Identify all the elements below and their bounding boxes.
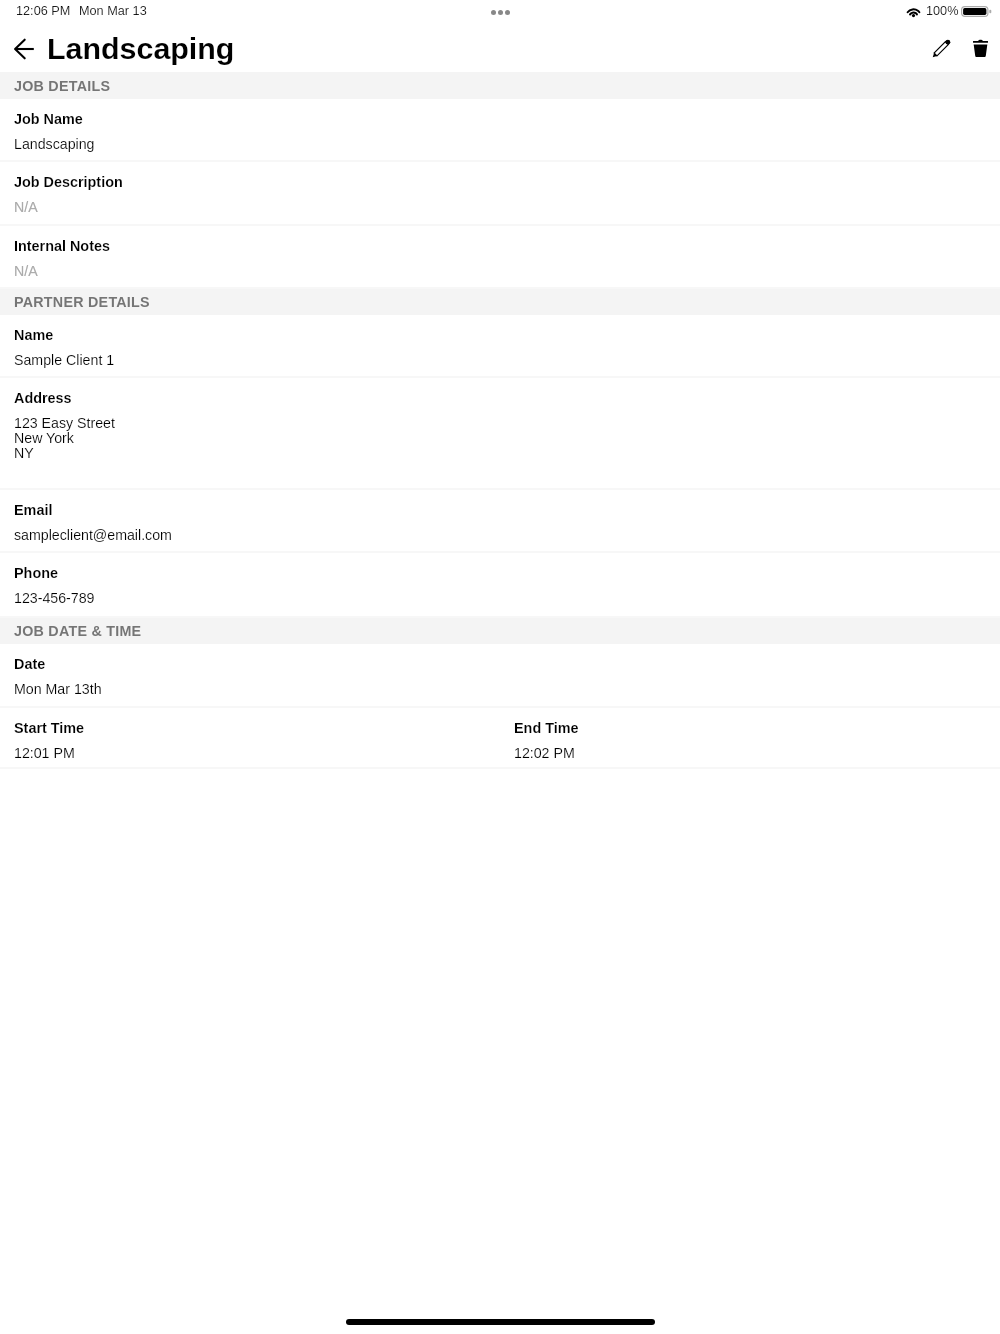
staticText: Phone	[14, 565, 58, 581]
button[interactable]: End Time	[500, 708, 1000, 769]
staticText: End Time	[514, 720, 579, 736]
staticText: 12:06 PM	[16, 4, 71, 18]
button[interactable]: Back	[5, 30, 43, 68]
button[interactable]: Phone	[0, 553, 1000, 618]
button[interactable]: Address	[0, 378, 1000, 490]
staticText: Job Description	[14, 174, 123, 190]
button[interactable]: Job Description	[0, 162, 1000, 226]
staticText: 100%	[926, 4, 959, 18]
button[interactable]: Edit	[923, 28, 961, 66]
button[interactable]: Delete	[961, 28, 999, 66]
staticText: Sample Client 1	[14, 352, 115, 368]
staticText: Internal Notes	[14, 238, 110, 254]
staticText: 123-456-789	[14, 590, 95, 606]
staticText: Start Time	[14, 720, 85, 736]
staticText: JOB DETAILS	[14, 78, 111, 94]
staticText: Date	[14, 656, 46, 672]
button[interactable]: Job Name	[0, 99, 1000, 162]
staticText: sampleclient@email.com	[14, 527, 172, 543]
staticText: Landscaping	[47, 31, 235, 65]
staticText: Job Name	[14, 111, 83, 127]
staticText: 12:01 PM	[14, 745, 75, 761]
button[interactable]: Date	[0, 644, 1000, 708]
staticText: 123 Easy Street New York NY	[14, 415, 115, 461]
staticText: Mon Mar 13th	[14, 681, 102, 697]
button[interactable]: Email	[0, 490, 1000, 553]
staticText: Mon Mar 13	[79, 4, 147, 18]
button[interactable]: Internal Notes	[0, 226, 1000, 289]
button[interactable]: Start Time	[0, 708, 500, 769]
staticText: PARTNER DETAILS	[14, 294, 150, 310]
staticText: Landscaping	[14, 136, 95, 152]
button[interactable]: Name	[0, 315, 1000, 378]
staticText: JOB DATE & TIME	[14, 623, 142, 639]
staticText: Name	[14, 327, 54, 343]
staticText: Address	[14, 390, 72, 406]
staticText: N/A	[14, 263, 38, 279]
staticText: N/A	[14, 199, 38, 215]
staticText: 12:02 PM	[514, 745, 575, 761]
staticText: Email	[14, 502, 53, 518]
